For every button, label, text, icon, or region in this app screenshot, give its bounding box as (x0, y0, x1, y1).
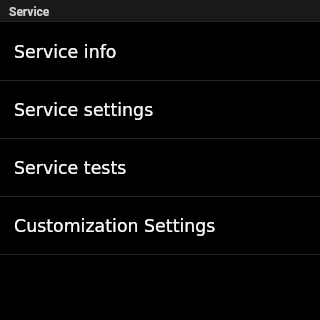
button[interactable]: Service settings (0, 81, 320, 139)
staticText: Service info (14, 42, 117, 62)
button[interactable]: Service info (0, 23, 320, 81)
staticText: Customization Settings (14, 216, 216, 236)
staticText: Service tests (14, 158, 127, 178)
staticText: Service settings (14, 100, 154, 120)
staticText: Service (9, 5, 50, 19)
button[interactable]: Customization Settings (0, 197, 320, 255)
button[interactable]: Service tests (0, 139, 320, 197)
